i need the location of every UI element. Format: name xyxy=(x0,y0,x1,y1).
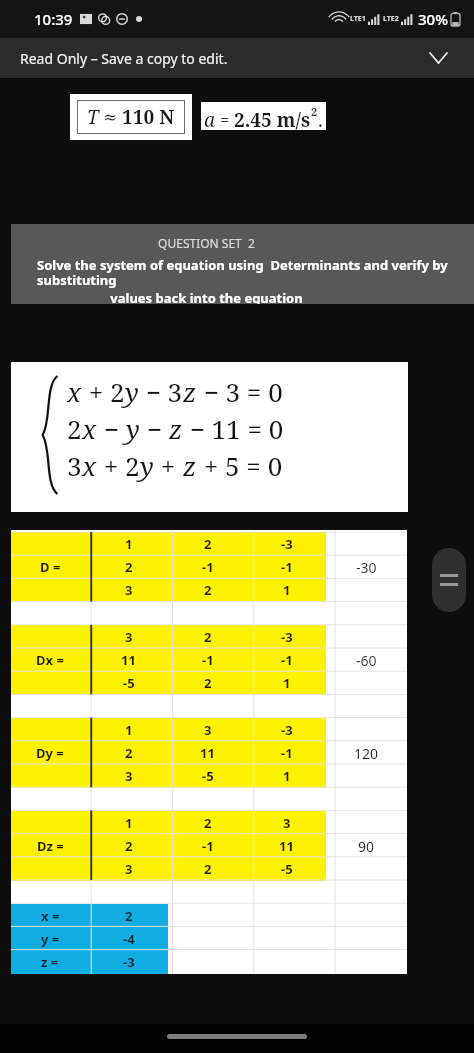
staticText: y = xyxy=(41,930,60,948)
button[interactable]: Expand xyxy=(424,44,452,72)
staticText: ≈ xyxy=(103,107,118,127)
staticText: -1 xyxy=(202,558,214,576)
staticText: 1 xyxy=(125,721,133,739)
staticText: 3 xyxy=(125,860,133,878)
staticText: + 5 = 0 xyxy=(197,448,283,483)
staticText: 1 xyxy=(283,581,291,599)
staticText: 2 xyxy=(125,558,133,576)
staticText: -5 xyxy=(281,860,293,878)
staticText: -3 xyxy=(281,628,293,646)
staticText: 2.45 m/s xyxy=(234,107,311,133)
staticText: 10:39 xyxy=(34,9,73,29)
staticText: 11 xyxy=(121,651,136,669)
staticText: Solve the system of equation using Deter… xyxy=(37,256,474,289)
staticText: -1 xyxy=(202,837,214,855)
staticText: LTE1 xyxy=(350,14,366,24)
staticText: 110 N xyxy=(122,104,175,130)
button[interactable]: Dz = xyxy=(11,811,89,881)
staticText: x = xyxy=(41,907,60,925)
staticText: 120 xyxy=(354,744,379,763)
staticText: 11 xyxy=(279,837,294,855)
staticText: 1 xyxy=(125,535,133,553)
staticText: 90 xyxy=(358,837,375,856)
button[interactable]: Read Only – Save a copy to edit. xyxy=(0,38,474,78)
staticText: z xyxy=(169,411,183,446)
staticText: 11 xyxy=(200,744,215,762)
staticText: D = xyxy=(40,558,61,576)
staticText: LTE2 xyxy=(383,14,399,24)
staticText: . xyxy=(318,107,323,133)
button[interactable]: x = xyxy=(11,904,168,974)
button[interactable]: QUESTION SET 2 xyxy=(11,224,474,304)
staticText: 1 xyxy=(125,814,133,832)
staticText: values back into the equation xyxy=(0,289,438,304)
staticText: 2 xyxy=(125,837,133,855)
staticText: 2 xyxy=(311,104,318,119)
staticText: z = xyxy=(41,953,59,971)
staticText: 3 xyxy=(67,448,82,483)
staticText: 3 xyxy=(283,814,291,832)
staticText: = xyxy=(220,108,230,131)
staticText: y xyxy=(125,374,139,409)
staticText: -1 xyxy=(281,651,293,669)
staticText: − 11 = 0 xyxy=(183,411,284,446)
staticText: 3 xyxy=(125,767,133,785)
staticText: − xyxy=(140,411,169,446)
staticText: -3 xyxy=(281,535,293,553)
staticText: -4 xyxy=(123,930,135,948)
staticText: + 2 xyxy=(82,374,125,409)
staticText: 2 xyxy=(67,411,82,446)
staticText: Dx = xyxy=(36,651,64,669)
staticText: QUESTION SET 2 xyxy=(158,235,255,251)
staticText: 2 xyxy=(204,628,212,646)
staticText: − 3 = 0 xyxy=(197,374,283,409)
staticText: 2 xyxy=(204,535,212,553)
staticText: -5 xyxy=(123,674,135,692)
staticText: 2 xyxy=(204,674,212,692)
staticText: 2 xyxy=(204,860,212,878)
staticText: 30% xyxy=(418,9,448,29)
button[interactable]: Dy = xyxy=(11,718,89,788)
button[interactable]: Dx = xyxy=(11,625,89,695)
staticText: -1 xyxy=(281,744,293,762)
button[interactable]: Scroll handle xyxy=(432,548,466,612)
staticText: 2 xyxy=(204,581,212,599)
staticText: x xyxy=(82,448,97,483)
staticText: -60 xyxy=(356,651,377,670)
staticText: 2 xyxy=(125,744,133,762)
staticText: 1 xyxy=(283,674,291,692)
button[interactable]: D = xyxy=(11,532,89,602)
staticText: -3 xyxy=(123,953,135,971)
staticText: 3 xyxy=(204,721,212,739)
staticText: z xyxy=(183,448,197,483)
staticText: 2 xyxy=(204,814,212,832)
staticText: 3 xyxy=(125,628,133,646)
staticText: x xyxy=(82,411,97,446)
staticText: + xyxy=(154,448,183,483)
staticText: -3 xyxy=(281,721,293,739)
staticText: − xyxy=(97,411,126,446)
staticText: 3 xyxy=(125,581,133,599)
staticText: − 3 xyxy=(139,374,183,409)
staticText: 2 xyxy=(125,907,133,925)
staticText: T xyxy=(87,104,99,130)
staticText: x xyxy=(67,374,82,409)
staticText: -1 xyxy=(281,558,293,576)
staticText: y xyxy=(126,411,140,446)
staticText: z xyxy=(183,374,197,409)
staticText: Dy = xyxy=(36,744,64,762)
staticText: 1 xyxy=(283,767,291,785)
staticText: -30 xyxy=(356,558,377,577)
staticText: + 2 xyxy=(97,448,140,483)
staticText: Dz = xyxy=(37,837,64,855)
staticText: Read Only – Save a copy to edit. xyxy=(20,49,228,68)
staticText: -1 xyxy=(202,651,214,669)
staticText: a xyxy=(204,107,216,133)
staticText: -5 xyxy=(202,767,214,785)
staticText: y xyxy=(140,448,154,483)
